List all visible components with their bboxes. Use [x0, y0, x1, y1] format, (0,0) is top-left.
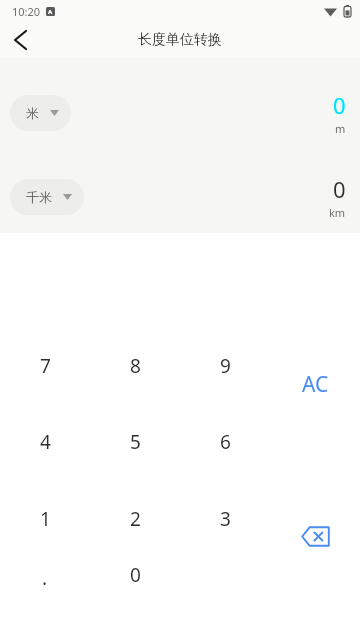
staticText: 0 [130, 562, 141, 588]
button[interactable]: Back [0, 22, 40, 58]
button[interactable]: AC [270, 364, 360, 404]
button[interactable]: Backspace [270, 515, 360, 557]
button[interactable]: 5 [90, 404, 180, 480]
staticText: 米 [26, 105, 39, 121]
staticText: A [48, 8, 53, 16]
button[interactable]: 7 [0, 327, 90, 404]
button[interactable]: 米 [10, 95, 71, 131]
button[interactable]: 千米 [10, 179, 84, 215]
button[interactable]: 6 [180, 404, 270, 480]
staticText: 长度单位转换 [138, 31, 222, 49]
staticText: 3 [220, 506, 231, 532]
button[interactable]: . [0, 557, 90, 627]
button[interactable]: 0 [90, 557, 180, 627]
staticText: 8 [130, 353, 141, 379]
staticText: AC [302, 370, 329, 399]
staticText: 7 [40, 353, 51, 379]
button[interactable]: 8 [90, 327, 180, 404]
button[interactable]: 1 [0, 480, 90, 557]
staticText: km [329, 205, 346, 220]
staticText: 2 [130, 506, 141, 532]
staticText: 5 [130, 429, 141, 455]
staticText: 9 [220, 353, 231, 379]
staticText: 6 [220, 429, 231, 455]
staticText: 千米 [26, 189, 52, 205]
staticText: 1 [40, 506, 51, 532]
staticText: 10:20 [12, 4, 41, 19]
staticText: 4 [40, 429, 51, 455]
staticText: 0 [333, 90, 346, 120]
button[interactable]: 2 [90, 480, 180, 557]
button[interactable]: 3 [180, 480, 270, 557]
staticText: . [42, 565, 48, 591]
staticText: 0 [333, 174, 346, 204]
staticText: m [335, 121, 346, 136]
button[interactable]: 4 [0, 404, 90, 480]
button[interactable]: 9 [180, 327, 270, 404]
